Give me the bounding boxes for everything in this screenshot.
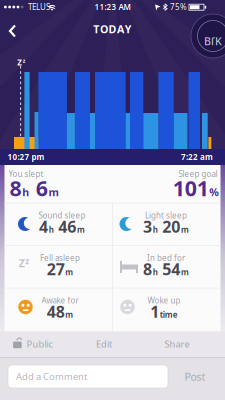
staticText: Public <box>26 338 52 350</box>
staticText: 1 <box>150 301 159 322</box>
staticText: z <box>23 57 26 64</box>
staticText: m <box>48 185 58 199</box>
staticText: m <box>181 267 189 277</box>
staticText: Edit <box>96 338 112 350</box>
staticText: 75% <box>170 2 187 12</box>
staticText: In bed for <box>147 253 185 263</box>
staticText: Fell asleep <box>40 253 80 263</box>
staticText: % <box>209 185 219 199</box>
staticText: 7:22 am <box>181 152 213 162</box>
staticText: Post <box>184 369 205 384</box>
staticText: 27 <box>47 258 65 280</box>
staticText: 4 <box>39 216 48 237</box>
staticText: 3 <box>143 216 152 237</box>
button[interactable]: Post <box>177 364 213 388</box>
staticText: Z <box>17 57 22 68</box>
staticText: m <box>65 267 73 277</box>
staticText: h <box>153 267 158 277</box>
button[interactable]: Profile <box>191 14 225 58</box>
staticText: 10:27 pm <box>7 152 44 162</box>
staticText: 48 <box>47 301 65 322</box>
staticText: 20 <box>158 216 180 237</box>
staticText: Sound sleep <box>38 210 85 221</box>
staticText: m <box>65 309 73 320</box>
staticText: TELUS <box>28 2 50 12</box>
staticText: m <box>77 224 85 235</box>
staticText: 101 <box>173 174 209 202</box>
staticText: 8 <box>143 258 152 280</box>
staticText: 11:23 AM <box>94 2 130 12</box>
button[interactable]: Add a Comment <box>8 365 168 388</box>
staticText: Light sleep <box>145 210 187 221</box>
staticText: h <box>49 224 54 235</box>
button[interactable]: Share <box>152 331 202 356</box>
staticText: You slept <box>8 169 43 179</box>
staticText: Share <box>164 338 189 350</box>
button[interactable]: Edit <box>79 331 129 356</box>
staticText: Sleep goal <box>178 169 217 179</box>
staticText: h <box>153 224 158 235</box>
staticText: 8 <box>10 174 22 202</box>
button[interactable]: Back <box>4 23 20 39</box>
staticText: BſK <box>204 34 222 48</box>
staticText: 46 <box>54 216 76 237</box>
staticText: 54 <box>158 258 180 280</box>
staticText: z <box>25 256 29 266</box>
staticText: Awake for <box>41 295 78 306</box>
staticText: 6 <box>30 174 48 202</box>
staticText: m <box>181 224 189 235</box>
staticText: h <box>22 185 29 199</box>
staticText: Z <box>19 256 25 270</box>
staticText: Add a Comment <box>16 370 87 383</box>
button[interactable]: Public <box>19 331 59 356</box>
staticText: TODAY <box>93 22 132 36</box>
staticText: Woke up <box>147 295 180 306</box>
staticText: time <box>160 309 178 320</box>
